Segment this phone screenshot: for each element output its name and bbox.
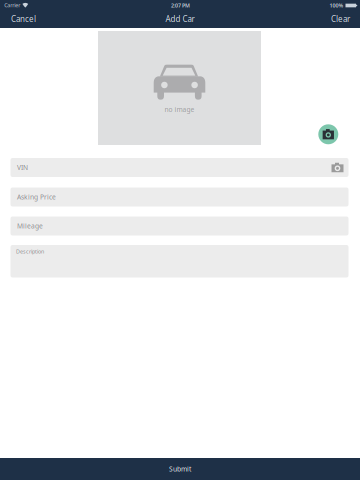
staticText: Description — [16, 248, 44, 255]
button[interactable]: Clear — [322, 10, 359, 28]
staticText: 100% — [329, 2, 343, 9]
staticText: VIN — [17, 163, 28, 172]
staticText: Add Car — [165, 14, 194, 24]
staticText: Cancel — [11, 14, 36, 24]
staticText: Submit — [169, 465, 191, 473]
staticText: Mileage — [17, 222, 43, 230]
staticText: Carrier — [4, 2, 20, 9]
button[interactable]: Take photo — [314, 120, 342, 148]
staticText: Clear — [331, 14, 350, 24]
staticText: no image — [164, 105, 194, 114]
button[interactable]: Scan VIN — [329, 159, 346, 176]
button[interactable]: Submit — [0, 458, 360, 480]
staticText: 2:07 PM — [171, 2, 190, 9]
staticText: Asking Price — [17, 193, 56, 201]
button[interactable]: Cancel — [2, 10, 45, 28]
